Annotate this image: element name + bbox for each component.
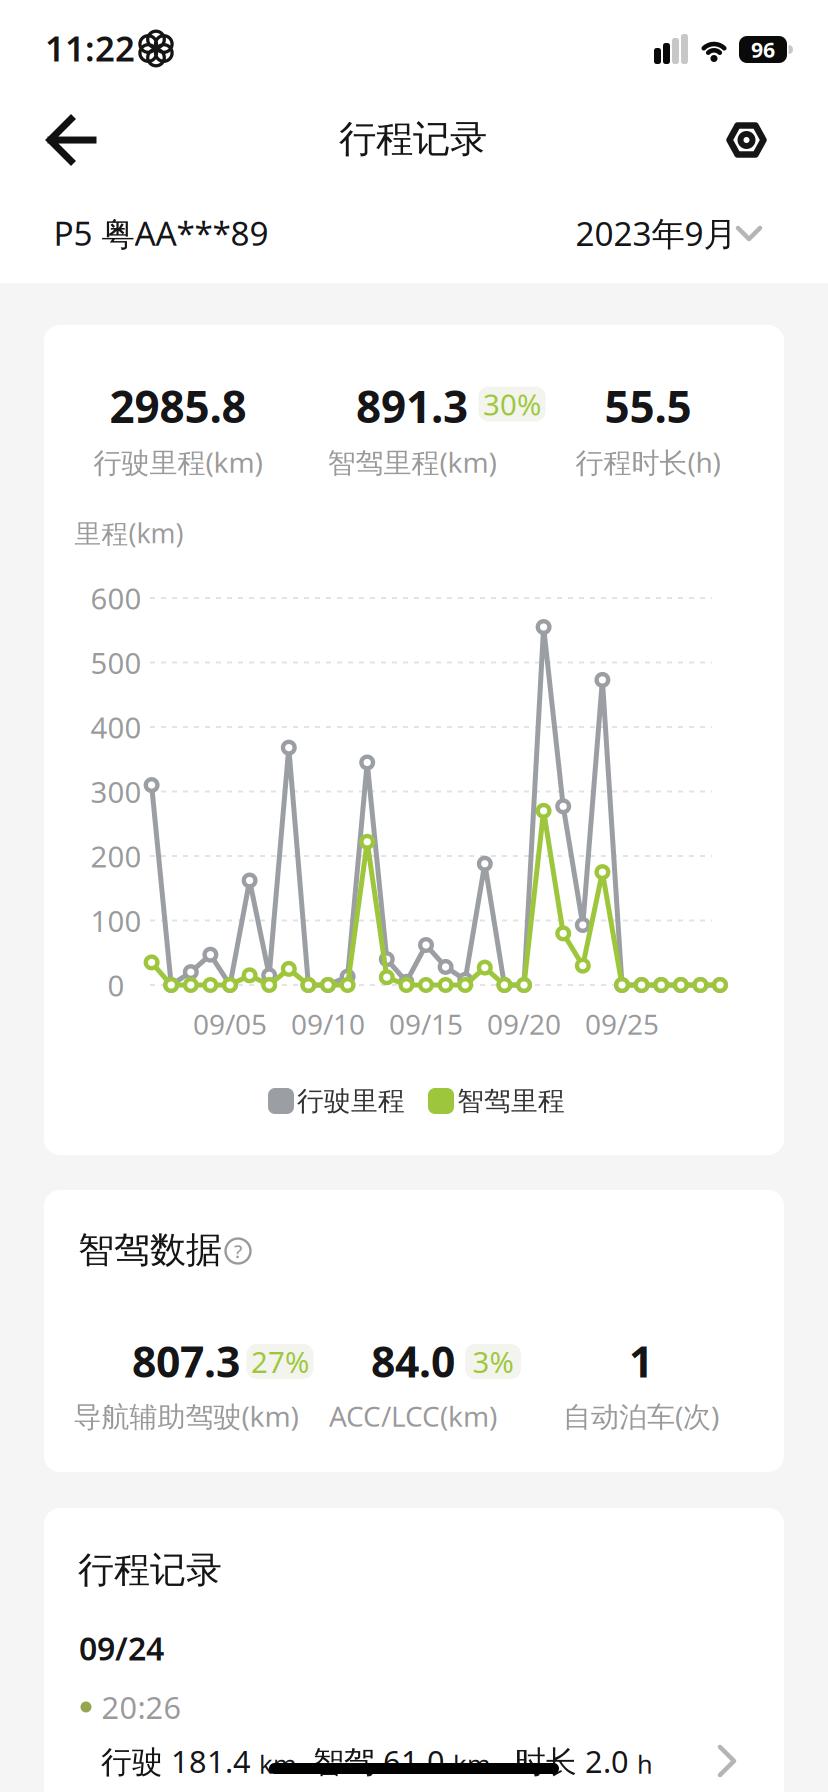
staticText: 智驾数据 — [78, 1228, 222, 1272]
staticText: 500 — [90, 643, 141, 682]
staticText: 行程记录 — [78, 1548, 222, 1592]
staticText: 行驶 181.4 km 智驾 61.0 km 时长 2.0 h — [101, 1741, 653, 1781]
staticText: 891.3 — [356, 377, 468, 435]
staticText: P5 粤AA***89 — [53, 211, 268, 255]
staticText: 11:22 — [45, 25, 135, 71]
staticText: 0 — [107, 965, 124, 1004]
staticText: 行程记录 — [339, 116, 487, 162]
staticText: 2023年9月 — [575, 211, 736, 255]
staticText: 20:26 — [101, 1687, 181, 1727]
button[interactable]: 2023年9月 — [578, 215, 778, 251]
staticText: 09/25 — [585, 1005, 659, 1043]
staticText: 84.0 — [371, 1333, 455, 1389]
staticText: 智驾里程(km) — [327, 443, 496, 481]
staticText: 行驶里程(km) — [93, 443, 262, 481]
staticText: ACC/LCC(km) — [329, 1397, 497, 1435]
staticText: 96 — [751, 35, 775, 64]
staticText: ? — [234, 1239, 242, 1263]
button[interactable]: 行驶 181.4 km 智驾 61.0 km 时长 2.0 h — [64, 1733, 764, 1789]
staticText: 09/20 — [487, 1005, 561, 1043]
staticText: 09/10 — [291, 1005, 365, 1043]
staticText: 30% — [483, 384, 541, 423]
staticText: 行程时长(h) — [575, 443, 720, 481]
staticText: 导航辅助驾驶(km) — [73, 1397, 298, 1435]
staticText: 2985.8 — [109, 377, 246, 435]
staticText: 3% — [472, 1342, 513, 1381]
button[interactable] — [47, 117, 95, 163]
staticText: 行驶里程 — [297, 1085, 405, 1117]
staticText: 300 — [90, 772, 141, 811]
staticText: 400 — [90, 707, 141, 746]
staticText: 09/15 — [389, 1005, 463, 1043]
staticText: 智驾里程 — [457, 1085, 565, 1117]
staticText: 自动泊车(次) — [563, 1397, 719, 1435]
staticText: 1 — [629, 1333, 653, 1389]
staticText: 27% — [251, 1342, 309, 1381]
staticText: 55.5 — [604, 377, 691, 435]
staticText: 100 — [90, 901, 141, 940]
staticText: 600 — [90, 578, 141, 617]
button[interactable]: ? — [225, 1238, 250, 1263]
button[interactable] — [726, 122, 766, 158]
staticText: 807.3 — [132, 1333, 240, 1389]
staticText: 09/05 — [193, 1005, 267, 1043]
staticText: 09/24 — [79, 1627, 164, 1669]
staticText: 里程(km) — [74, 515, 183, 551]
staticText: 200 — [90, 836, 141, 875]
